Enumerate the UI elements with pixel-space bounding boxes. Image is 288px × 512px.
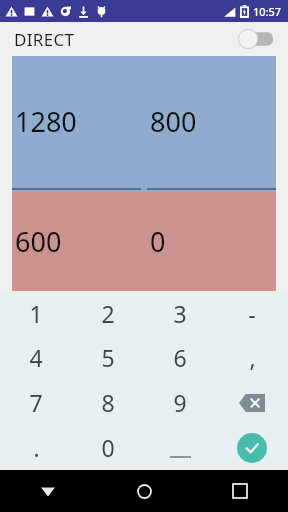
button[interactable]: Home <box>96 470 192 512</box>
staticText: 800 <box>150 103 197 140</box>
button[interactable]: 8 <box>72 380 144 425</box>
button[interactable]: 1 <box>0 291 72 335</box>
button[interactable]: 2 <box>72 291 144 335</box>
staticText: 6 <box>173 342 187 373</box>
button[interactable]: Backspace <box>216 380 288 425</box>
button[interactable]: 800 <box>147 56 276 192</box>
button[interactable]: 0 <box>147 192 276 291</box>
button[interactable]: , <box>216 335 288 380</box>
staticText: 4 <box>29 342 43 373</box>
staticText: - <box>248 298 256 329</box>
button[interactable]: Toggle direct mode <box>238 28 274 50</box>
staticText: 600 <box>15 223 62 260</box>
staticText: 7 <box>29 387 43 418</box>
button[interactable]: Back <box>0 470 96 512</box>
button[interactable]: Recents <box>192 470 288 512</box>
staticText: 10:57 <box>253 4 282 19</box>
button[interactable]: . <box>0 425 72 470</box>
staticText: 2 <box>101 298 115 329</box>
staticText: 1280 <box>15 103 77 140</box>
button[interactable]: 7 <box>0 380 72 425</box>
staticText: . <box>33 432 40 463</box>
staticText: 5 <box>101 342 115 373</box>
staticText: 3 <box>173 298 187 329</box>
button[interactable]: 9 <box>144 380 216 425</box>
staticText: 0 <box>101 432 115 463</box>
button[interactable]: 600 <box>12 192 141 291</box>
button[interactable]: 4 <box>0 335 72 380</box>
button[interactable]: 1280 <box>12 56 141 192</box>
staticText: 8 <box>101 387 115 418</box>
button[interactable]: 6 <box>144 335 216 380</box>
staticText: 1 <box>29 298 43 329</box>
button[interactable]: Confirm <box>216 425 288 470</box>
button[interactable]: 5 <box>72 335 144 380</box>
button[interactable]: - <box>216 291 288 335</box>
staticText: 0 <box>150 223 166 260</box>
staticText: , <box>249 342 256 373</box>
button[interactable]: 3 <box>144 291 216 335</box>
staticText: DIRECT <box>14 28 75 51</box>
button[interactable]: 0 <box>72 425 144 470</box>
staticText: 9 <box>173 387 187 418</box>
button[interactable]: Space <box>144 425 216 470</box>
